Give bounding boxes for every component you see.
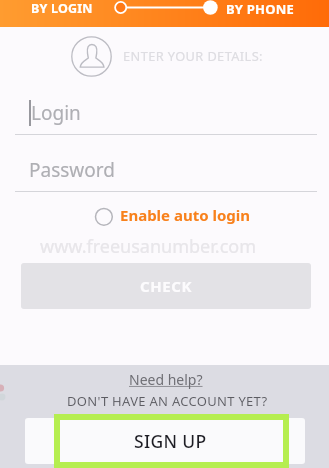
button[interactable]: BY PHONE <box>226 0 294 20</box>
other: Switch login mode <box>0 0 329 27</box>
staticText: DON'T HAVE AN ACCOUNT YET? <box>67 392 268 410</box>
button[interactable]: BY LOGIN <box>31 0 93 20</box>
staticText: Need help? <box>129 370 203 389</box>
button[interactable]: SIGN UP <box>25 418 305 464</box>
staticText: BY LOGIN <box>31 0 93 17</box>
staticText: Password <box>29 157 115 183</box>
button[interactable]: Need help? <box>129 370 203 389</box>
staticText: CHECK <box>140 276 193 296</box>
staticText: www.freeusanumber.com <box>40 234 256 259</box>
staticText: Login <box>31 100 81 126</box>
button[interactable]: CHECK <box>21 263 311 309</box>
staticText: SIGN UP <box>134 429 207 453</box>
staticText: BY PHONE <box>226 0 294 18</box>
staticText: Enable auto login <box>120 205 251 225</box>
button[interactable]: Enable auto login <box>95 204 251 226</box>
staticText: ENTER YOUR DETAILS: <box>123 47 263 64</box>
